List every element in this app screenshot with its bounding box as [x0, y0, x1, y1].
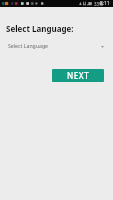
staticText: Select Language:: [6, 23, 74, 34]
staticText: Select Language: [8, 42, 49, 49]
staticText: 8:11: [100, 0, 110, 7]
staticText: NEXT: [67, 70, 90, 81]
staticText: 33%: [94, 1, 103, 7]
button[interactable]: NEXT: [52, 69, 104, 82]
other: Open language list: [101, 46, 104, 48]
button[interactable]: Select Language: [0, 39, 113, 52]
